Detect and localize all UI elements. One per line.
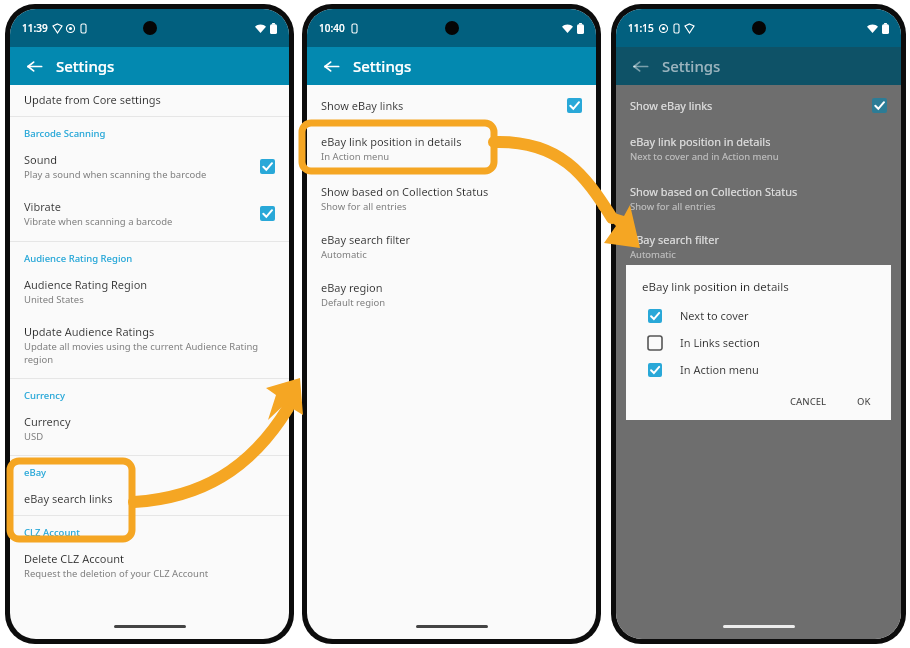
staticText: Default region [321,296,386,309]
staticText: In Links section [680,335,760,350]
button[interactable]: In Action menu [642,360,879,379]
staticText: CLZ Account [24,526,80,539]
button[interactable]: In Links section [642,333,879,352]
button[interactable]: Update from Core settings [10,85,289,116]
staticText: Settings [662,56,721,76]
staticText: Audience Rating Region [24,252,133,265]
staticText: OK [857,395,871,408]
staticText: eBay region [630,280,692,295]
button[interactable]: Update Audience Ratings [10,315,289,375]
staticText: In Action menu [680,362,759,377]
staticText: eBay search links [24,491,113,506]
button[interactable]: eBay search filter [307,226,596,267]
staticText: Automatic [630,248,676,261]
button[interactable]: eBay search links [10,482,289,515]
staticText: USD [24,430,44,443]
staticText: eBay link position in details [642,279,789,295]
staticText: Update all movies using the current Audi… [24,340,275,366]
staticText: eBay link position in details [321,134,462,149]
staticText: United States [24,293,84,306]
button[interactable]: Show based on Collection Status [307,178,596,219]
staticText: eBay [24,466,47,479]
button[interactable]: Currency [10,405,289,452]
staticText: Show based on Collection Status [321,184,489,199]
button[interactable]: Back [18,50,50,82]
staticText: Show for all entries [630,200,716,213]
staticText: In Action menu [321,150,390,163]
staticText: eBay link position in details [630,134,771,149]
button[interactable]: eBay link position in details [616,128,901,169]
staticText: Vibrate when scanning a barcode [24,215,173,228]
staticText: Vibrate [24,199,61,214]
staticText: Sound [24,152,58,167]
button[interactable]: Back [315,50,347,82]
staticText: eBay search filter [630,232,720,247]
staticText: Update from Core settings [24,92,161,107]
staticText: Show eBay links [630,98,872,113]
staticText: 11:39 [22,21,48,35]
button[interactable]: eBay link position in details [307,128,596,169]
button[interactable]: CANCEL [782,391,835,412]
button[interactable]: Delete CLZ Account [10,542,289,589]
button[interactable]: eBay search filter [616,226,901,267]
button[interactable]: Next to cover [642,306,879,325]
staticText: Next to cover and in Action menu [630,150,779,163]
button[interactable]: eBay region [616,274,901,315]
button[interactable]: Sound [10,143,289,190]
staticText: Currency [24,414,71,429]
staticText: 11:15 [628,21,654,35]
staticText: Play a sound when scanning the barcode [24,168,207,181]
button[interactable]: Vibrate [10,190,289,237]
staticText: Update Audience Ratings [24,324,155,339]
staticText: CANCEL [790,395,827,408]
staticText: Currency [24,389,65,402]
staticText: Show for all entries [321,200,407,213]
staticText: Settings [56,56,115,76]
staticText: Request the deletion of your CLZ Account [24,567,209,580]
staticText: eBay region [321,280,383,295]
button[interactable]: Audience Rating Region [10,268,289,315]
staticText: Settings [353,56,412,76]
staticText: 10:40 [319,21,345,35]
staticText: Delete CLZ Account [24,551,124,566]
button[interactable]: Show based on Collection Status [616,178,901,219]
button[interactable]: Show eBay links [307,91,596,120]
staticText: Next to cover [680,308,749,323]
button[interactable]: OK [849,391,879,412]
staticText: Show eBay links [321,98,404,113]
staticText: eBay search filter [321,232,411,247]
button[interactable]: eBay region [307,274,596,315]
staticText: Show based on Collection Status [630,184,798,199]
staticText: Automatic [321,248,367,261]
staticText: Barcode Scanning [24,127,106,140]
staticText: Audience Rating Region [24,277,148,292]
